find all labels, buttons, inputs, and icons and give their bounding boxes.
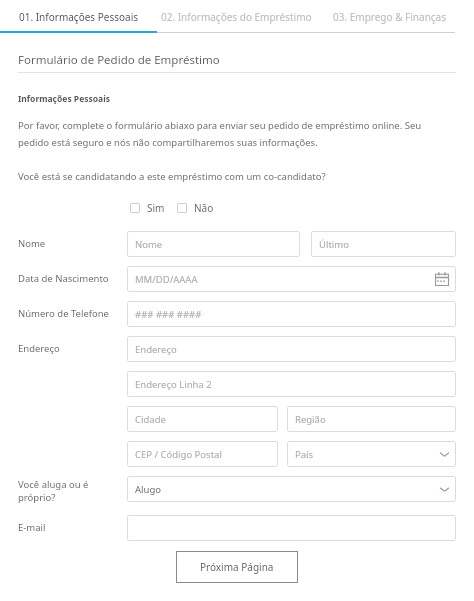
staticText: Você aluga ou é próprio?: [18, 478, 113, 504]
staticText: Endereço Linha 2: [135, 378, 212, 391]
staticText: Informações Pessoais: [18, 93, 110, 105]
button[interactable]: Escolher data: [435, 272, 449, 286]
staticText: Endereço: [18, 342, 60, 355]
staticText: Não: [194, 201, 214, 215]
button[interactable]: Endereço Linha 2: [127, 371, 456, 397]
staticText: Região: [295, 413, 326, 426]
staticText: País: [295, 448, 314, 461]
staticText: Você está se candidatando a este emprést…: [18, 170, 326, 183]
button[interactable]: MM/DD/AAAA: [127, 266, 456, 292]
button[interactable]: Sim: [130, 201, 165, 215]
staticText: Formulário de Pedido de Empréstimo: [18, 52, 220, 68]
button[interactable]: Região: [287, 406, 456, 432]
staticText: 01. Informações Pessoais: [19, 10, 139, 24]
staticText: CEP / Código Postal: [135, 448, 222, 461]
button[interactable]: Nome: [127, 231, 300, 257]
button[interactable]: 02. Informações do Empréstimo: [157, 0, 315, 33]
button[interactable]: Cidade: [127, 406, 278, 432]
button[interactable]: CEP / Código Postal: [127, 441, 278, 467]
staticText: Nome: [135, 238, 163, 251]
button[interactable]: 01. Informações Pessoais: [0, 0, 157, 33]
button[interactable]: Alugo: [127, 476, 456, 502]
staticText: Cidade: [135, 413, 166, 426]
staticText: Data de Nascimento: [18, 272, 109, 285]
staticText: 02. Informações do Empréstimo: [161, 10, 312, 24]
button[interactable]: ### ### ####: [127, 301, 456, 327]
button[interactable]: Último: [311, 231, 456, 257]
staticText: Último: [319, 238, 349, 251]
button[interactable]: Não: [177, 201, 214, 215]
staticText: Próxima Página: [200, 560, 274, 574]
button[interactable]: Próxima Página: [176, 551, 298, 583]
button[interactable]: [127, 515, 456, 541]
staticText: E-mail: [18, 521, 46, 534]
staticText: MM/DD/AAAA: [135, 273, 198, 286]
button[interactable]: País: [287, 441, 456, 467]
staticText: Por favor, complete o formulário abiaxo …: [18, 119, 448, 149]
staticText: ### ### ####: [135, 308, 202, 321]
staticText: Número de Telefone: [18, 307, 109, 320]
staticText: Sim: [147, 201, 165, 215]
button[interactable]: Endereço: [127, 336, 456, 362]
staticText: 03. Emprego & Finanças: [333, 10, 447, 24]
button[interactable]: 03. Emprego & Finanças: [315, 0, 465, 33]
staticText: Nome: [18, 237, 46, 250]
staticText: Alugo: [135, 483, 161, 496]
staticText: Endereço: [135, 343, 177, 356]
